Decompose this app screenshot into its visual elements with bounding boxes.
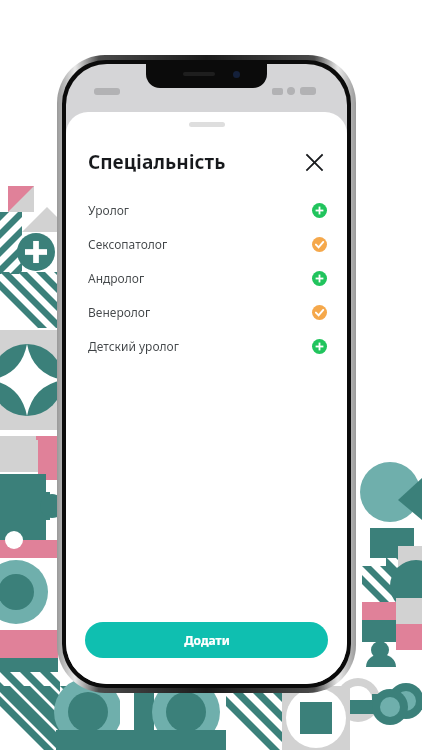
button[interactable]: Close — [299, 147, 329, 177]
button[interactable]: Детский уролог — [66, 329, 347, 363]
staticText: Додати — [184, 632, 230, 648]
staticText: Андролог — [88, 270, 145, 286]
staticText: Детский уролог — [88, 338, 179, 354]
button[interactable]: Додати — [85, 622, 328, 658]
staticText: Венеролог — [88, 304, 151, 320]
button[interactable]: Сексопатолог — [66, 227, 347, 261]
staticText: Сексопатолог — [88, 236, 168, 252]
button[interactable]: Андролог — [66, 261, 347, 295]
button[interactable]: Уролог — [66, 193, 347, 227]
staticText: Уролог — [88, 202, 130, 218]
staticText: Спеціальність — [88, 149, 226, 175]
button[interactable]: Венеролог — [66, 295, 347, 329]
